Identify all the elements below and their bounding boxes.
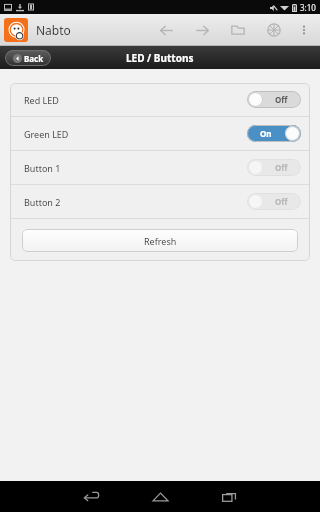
staticText: Off <box>275 94 288 105</box>
button[interactable]: Button 1 <box>10 151 310 184</box>
staticText: Nabto <box>36 22 71 38</box>
staticText: 3:10 <box>300 2 316 13</box>
staticText: Button 2 <box>24 196 61 208</box>
staticText: On <box>260 128 272 139</box>
button[interactable]: Forward <box>188 16 216 44</box>
button[interactable]: On <box>247 125 301 142</box>
button[interactable]: Button 2 <box>10 185 310 218</box>
button[interactable]: Globe <box>260 16 288 44</box>
button[interactable]: Off <box>247 159 301 176</box>
button[interactable]: Bookmarks folder <box>224 16 252 44</box>
staticText: Button 1 <box>24 162 61 174</box>
staticText: Off <box>275 162 288 173</box>
button[interactable]: Back <box>152 16 180 44</box>
button[interactable]: Home <box>125 481 195 512</box>
staticText: Back <box>24 53 44 64</box>
staticText: LED / Buttons <box>126 51 194 65</box>
staticText: Refresh <box>144 235 177 247</box>
button[interactable]: Off <box>247 193 301 210</box>
button[interactable]: Green LED <box>10 117 310 150</box>
button[interactable]: Off <box>247 91 301 108</box>
button[interactable]: Nabto app icon <box>4 18 28 42</box>
button[interactable]: Refresh <box>22 229 298 252</box>
staticText: Red LED <box>24 94 59 106</box>
staticText: Green LED <box>24 128 69 140</box>
staticText: Off <box>275 196 288 207</box>
button[interactable]: Red LED <box>10 83 310 116</box>
button[interactable]: Back <box>55 481 125 512</box>
button[interactable]: Recent apps <box>195 481 265 512</box>
button[interactable]: Back <box>5 50 51 66</box>
button[interactable]: More options <box>292 18 316 42</box>
